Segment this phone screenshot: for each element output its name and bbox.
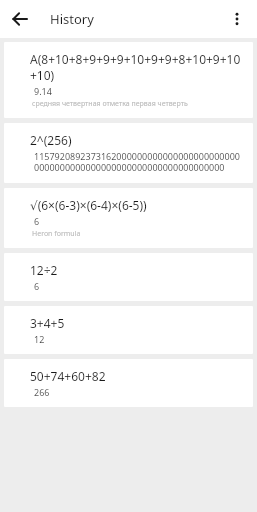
- staticText: 12÷2: [30, 262, 58, 278]
- button[interactable]: Back: [8, 7, 32, 31]
- button[interactable]: 50+74+60+82: [4, 359, 253, 407]
- button[interactable]: More options: [225, 7, 249, 31]
- staticText: √(6×(6-3)×(6-4)×(6-5)): [30, 197, 147, 213]
- button[interactable]: A(8+10+8+9+9+9+10+9+9+8+10+9+10+10): [4, 42, 253, 118]
- button[interactable]: 3+4+5: [4, 306, 253, 354]
- button[interactable]: 2^(256): [4, 123, 253, 183]
- staticText: 266: [34, 386, 50, 398]
- staticText: 9.14: [34, 85, 52, 97]
- staticText: A(8+10+8+9+9+9+10+9+9+8+10+9+10+10): [30, 51, 243, 83]
- button[interactable]: 12÷2: [4, 253, 253, 301]
- staticText: 1157920892373162000000000000000000000000…: [34, 150, 243, 174]
- staticText: 12: [34, 333, 45, 345]
- staticText: 50+74+60+82: [30, 368, 106, 384]
- staticText: 2^(256): [30, 132, 72, 148]
- staticText: 6: [34, 280, 40, 292]
- staticText: History: [50, 10, 94, 28]
- staticText: 3+4+5: [30, 315, 65, 331]
- staticText: средняя четвертная отметка первая четвер…: [32, 99, 188, 109]
- staticText: Heron formula: [32, 229, 81, 239]
- staticText: 6: [34, 215, 40, 227]
- button[interactable]: √(6×(6-3)×(6-4)×(6-5)): [4, 188, 253, 248]
